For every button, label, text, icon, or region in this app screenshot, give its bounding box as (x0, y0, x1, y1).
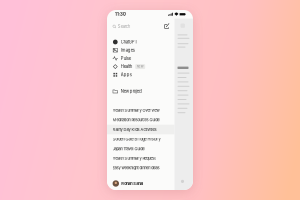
staticText: New project (121, 89, 142, 94)
staticText: Rohan Sahal (121, 181, 143, 186)
staticText: NEW (137, 65, 144, 68)
staticText: Japan Travel Guide (113, 146, 145, 151)
staticText: Apps (121, 72, 132, 77)
button[interactable]: Rohan Sahal (107, 177, 174, 190)
button[interactable]: New project (107, 87, 174, 95)
staticText: Search (118, 24, 130, 29)
button[interactable]: Golden Gate Bridge History (107, 134, 174, 144)
button[interactable]: Rainy Day Kids Activities (107, 125, 174, 134)
staticText: Health (121, 64, 132, 69)
button[interactable]: Pulse (107, 54, 174, 62)
button[interactable]: Easy weeknight dinner ideas (107, 163, 174, 173)
button[interactable]: New chat (164, 24, 169, 29)
staticText: Health Summary Overview (113, 108, 160, 113)
button[interactable]: ChatGPT (107, 38, 174, 46)
staticText: Pulse (121, 56, 131, 61)
staticText: ChatGPT (121, 39, 138, 44)
button[interactable]: Health Summary Overview (107, 105, 174, 115)
button[interactable]: Japan Travel Guide (107, 144, 174, 153)
staticText: Golden Gate Bridge History (113, 137, 161, 141)
staticText: Rainy Day Kids Activities (113, 127, 157, 132)
staticText: Images (121, 48, 135, 53)
staticText: 11:30 (115, 12, 126, 17)
button[interactable]: Health Summary Request (107, 153, 174, 163)
button[interactable]: Health (107, 62, 174, 71)
button[interactable]: Images (107, 46, 174, 54)
button[interactable]: Close sidebar (177, 18, 185, 28)
staticText: Health Summary Request (113, 156, 156, 161)
staticText: Meditation Resources Guide (113, 117, 160, 122)
button[interactable]: Apps (107, 71, 174, 79)
staticText: Easy weeknight dinner ideas (113, 165, 160, 170)
button[interactable]: Meditation Resources Guide (107, 115, 174, 125)
